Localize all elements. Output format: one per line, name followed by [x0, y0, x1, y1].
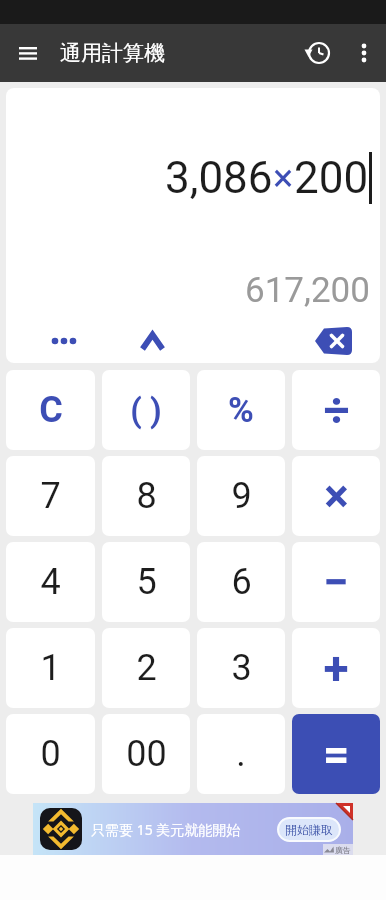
button[interactable]: ÷	[292, 370, 380, 450]
staticText: ÷	[323, 383, 350, 437]
button[interactable]	[341, 24, 386, 82]
button[interactable]: 3	[197, 628, 285, 708]
staticText: =	[323, 727, 350, 781]
staticText: 9	[231, 475, 252, 517]
button[interactable]: ×	[292, 456, 380, 536]
button[interactable]: C	[6, 370, 95, 450]
button[interactable]	[0, 24, 56, 82]
staticText: 通用計算機	[60, 40, 165, 66]
staticText: 6	[231, 561, 252, 603]
staticText: 0	[40, 733, 61, 775]
staticText: −	[323, 555, 349, 609]
button[interactable]: 開始賺取	[277, 817, 341, 842]
staticText: .	[236, 733, 246, 775]
button[interactable]: 7	[6, 456, 95, 536]
button[interactable]: −	[292, 542, 380, 622]
staticText: 廣告	[335, 845, 351, 855]
staticText: 7	[40, 475, 61, 517]
button[interactable]: 4	[6, 542, 95, 622]
button[interactable]: 只需要 15 美元就能開始	[33, 803, 353, 855]
button[interactable]: 1	[6, 628, 95, 708]
staticText: ×	[273, 156, 294, 201]
staticText: 5	[136, 561, 157, 603]
staticText: %	[228, 390, 254, 431]
button[interactable]: .	[197, 714, 285, 794]
staticText: 3,086	[165, 152, 273, 204]
button[interactable]: %	[197, 370, 285, 450]
button[interactable]: +	[292, 628, 380, 708]
staticText: 開始賺取	[285, 822, 333, 837]
staticText: 3	[231, 647, 252, 689]
button[interactable]: 5	[102, 542, 190, 622]
button[interactable]: 00	[102, 714, 190, 794]
staticText: +	[323, 641, 349, 695]
staticText: 2	[136, 647, 157, 689]
staticText: 1	[40, 647, 61, 689]
button[interactable]: 6	[197, 542, 285, 622]
button[interactable]	[295, 24, 341, 82]
button[interactable]	[315, 319, 352, 363]
staticText: C	[39, 389, 63, 431]
button[interactable]: 0	[6, 714, 95, 794]
button[interactable]: =	[292, 714, 380, 794]
button[interactable]	[48, 326, 80, 356]
button[interactable]: 9	[197, 456, 285, 536]
staticText: 00	[126, 733, 167, 775]
staticText: ×	[324, 469, 349, 523]
button[interactable]	[134, 326, 170, 356]
button[interactable]: ( )	[102, 370, 190, 450]
staticText: 8	[136, 475, 157, 517]
button[interactable]: 2	[102, 628, 190, 708]
button[interactable]: 8	[102, 456, 190, 536]
staticText: 200	[294, 152, 369, 204]
staticText: ( )	[130, 391, 162, 430]
staticText: 只需要 15 美元就能開始	[91, 820, 241, 839]
staticText: 4	[40, 561, 61, 603]
staticText: 617,200	[245, 270, 370, 311]
